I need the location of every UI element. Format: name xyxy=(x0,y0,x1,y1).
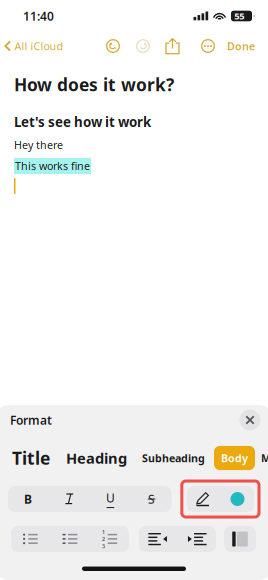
button[interactable]: Undo xyxy=(98,32,128,60)
button[interactable]: Title xyxy=(8,443,54,472)
button[interactable]: Numbered list xyxy=(90,526,129,552)
staticText: Hey there xyxy=(14,138,63,152)
button[interactable]: Subheading xyxy=(138,448,209,468)
button[interactable]: Highlight xyxy=(187,486,220,512)
staticText: 3 xyxy=(102,543,105,550)
button[interactable]: Outdent xyxy=(139,526,177,552)
staticText: This works fine xyxy=(15,159,90,173)
staticText: 11:40 xyxy=(23,8,54,24)
staticText: All iCloud xyxy=(14,39,63,53)
button[interactable]: Block quote xyxy=(224,526,256,552)
button[interactable]: Dashed list xyxy=(51,526,89,552)
button[interactable]: Highlight colour xyxy=(221,486,254,512)
button[interactable]: Close xyxy=(237,407,263,433)
staticText: Format xyxy=(10,412,52,428)
staticText: Let's see how it work xyxy=(14,113,151,131)
staticText: M xyxy=(261,451,268,465)
button[interactable]: All iCloud xyxy=(0,32,67,60)
staticText: B xyxy=(24,491,32,507)
button[interactable]: Redo xyxy=(128,32,158,60)
staticText: 55 xyxy=(234,10,244,22)
button[interactable]: Heading xyxy=(62,445,131,471)
button[interactable]: Underline xyxy=(90,486,130,512)
staticText: Done xyxy=(227,39,255,53)
button[interactable]: Bold xyxy=(8,486,48,512)
staticText: Title xyxy=(12,446,50,469)
button[interactable]: More xyxy=(193,32,223,60)
button[interactable]: Italic xyxy=(49,486,89,512)
staticText: Subheading xyxy=(142,451,205,465)
button[interactable]: Share xyxy=(158,32,187,60)
staticText: 1 xyxy=(102,528,105,535)
staticText: Heading xyxy=(66,448,127,468)
button[interactable]: Bulleted list xyxy=(11,526,49,552)
button[interactable]: Done xyxy=(225,32,257,60)
staticText: S xyxy=(148,491,155,507)
staticText: 2 xyxy=(102,535,105,543)
staticText: Body xyxy=(221,451,248,465)
button[interactable]: Body xyxy=(214,446,255,470)
button[interactable]: Strikethrough xyxy=(132,486,172,512)
staticText: U xyxy=(106,490,115,506)
staticText: How does it work? xyxy=(14,73,174,96)
button[interactable]: Indent xyxy=(178,526,216,552)
